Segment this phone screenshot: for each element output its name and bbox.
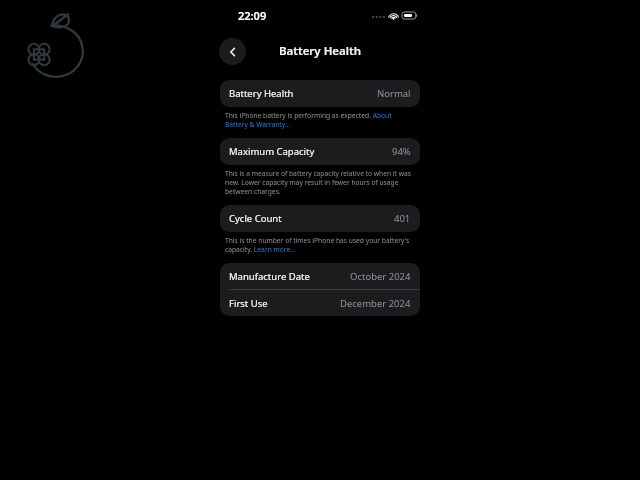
button[interactable]: First Use: [220, 290, 420, 316]
staticText: Cycle Count: [229, 212, 282, 225]
button[interactable]: Manufacture Date: [220, 263, 420, 289]
staticText: Battery Health: [279, 43, 362, 59]
staticText: This iPhone battery is performing as exp…: [225, 111, 414, 129]
button[interactable]: Cycle Count: [220, 205, 420, 232]
staticText: Manufacture Date: [229, 270, 310, 283]
staticText: This is the number of times iPhone has u…: [225, 236, 414, 254]
button[interactable]: Battery Health: [220, 80, 420, 107]
staticText: Normal: [377, 87, 411, 100]
staticText: October 2024: [350, 270, 411, 283]
staticText: This is a measure of battery capacity re…: [225, 169, 414, 196]
staticText: First Use: [229, 297, 268, 310]
button[interactable]: Back: [219, 38, 246, 65]
staticText: Battery Health: [229, 87, 294, 100]
staticText: 22:09: [238, 8, 267, 23]
staticText: December 2024: [340, 297, 411, 310]
staticText: 94%: [392, 145, 411, 158]
staticText: Maximum Capacity: [229, 145, 315, 158]
button[interactable]: Maximum Capacity: [220, 138, 420, 165]
staticText: 401: [394, 212, 411, 225]
